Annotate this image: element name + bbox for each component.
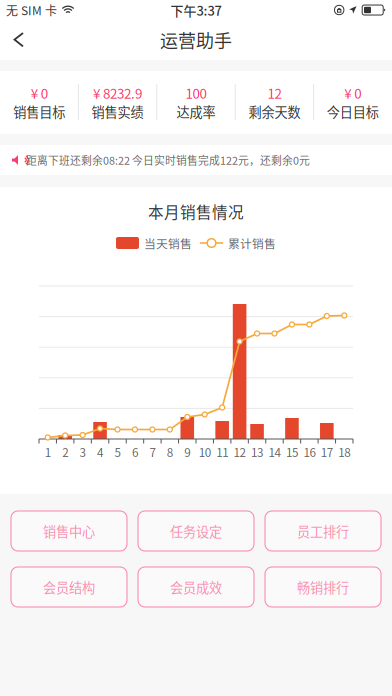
button[interactable]: 任务设定 xyxy=(138,511,254,551)
button[interactable]: 会员成效 xyxy=(138,567,254,607)
button[interactable]: 会员结构 xyxy=(11,567,127,607)
staticText: 运营助手 xyxy=(160,27,232,53)
staticText: 会员成效 xyxy=(170,577,222,596)
staticText: 100 xyxy=(185,83,206,103)
staticText: 12 xyxy=(267,83,281,103)
staticText: 15 xyxy=(286,443,298,460)
staticText: 员工排行 xyxy=(297,521,349,540)
staticText: 5 xyxy=(114,443,120,460)
staticText: 3 xyxy=(80,443,86,460)
staticText: 4 xyxy=(97,443,103,460)
staticText: ¥ 0 xyxy=(31,83,48,103)
button[interactable]: 员工排行 xyxy=(265,511,381,551)
staticText: 13 xyxy=(251,443,263,460)
staticText: ¥ 0 xyxy=(344,83,361,103)
staticText: 无 SIM 卡 xyxy=(6,1,57,19)
staticText: 达成率 xyxy=(176,102,215,121)
staticText: 8 xyxy=(167,443,173,460)
staticText: 畅销排行 xyxy=(297,577,349,596)
staticText: ¥ 8232.9 xyxy=(93,83,142,103)
button[interactable]: 销售中心 xyxy=(11,511,127,551)
staticText: 今日目标 xyxy=(327,102,379,121)
staticText: 14 xyxy=(268,443,280,460)
staticText: 本月销售情况 xyxy=(148,200,244,223)
staticText: 当天销售 xyxy=(144,234,192,252)
staticText: 9 xyxy=(184,443,190,460)
staticText: 会员结构 xyxy=(43,577,95,596)
staticText: 销售中心 xyxy=(43,521,95,540)
staticText: 18 xyxy=(338,443,350,460)
staticText: 17 xyxy=(321,443,333,460)
staticText: 累计销售 xyxy=(228,234,276,252)
staticText: 1 xyxy=(45,443,51,460)
staticText: 16 xyxy=(303,443,315,460)
staticText: 7 xyxy=(149,443,155,460)
staticText: 10 xyxy=(199,443,211,460)
staticText: 下午3:37 xyxy=(170,1,221,19)
staticText: 12 xyxy=(234,443,246,460)
staticText: 2 xyxy=(62,443,68,460)
staticText: 11 xyxy=(216,443,228,460)
staticText: 剩余天数 xyxy=(248,102,300,121)
staticText: 任务设定 xyxy=(170,521,222,540)
button[interactable]: 畅销排行 xyxy=(265,567,381,607)
staticText: 销售目标 xyxy=(13,102,65,121)
staticText: 销售实绩 xyxy=(92,102,144,121)
staticText: 距离下班还剩余08:22 今日实时销售完成122元，还剩余0元 xyxy=(26,152,310,168)
button[interactable]: 返回 xyxy=(0,21,38,59)
staticText: 6 xyxy=(132,443,138,460)
